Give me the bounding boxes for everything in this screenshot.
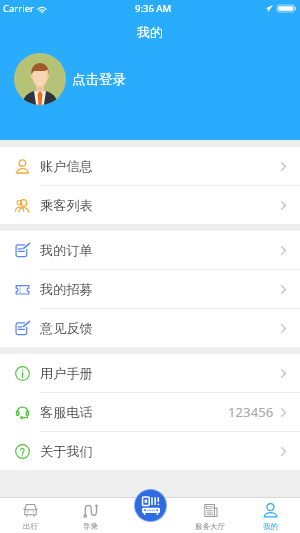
staticText: 我的招募 — [40, 281, 93, 298]
button[interactable]: 导乘 — [60, 498, 120, 533]
staticText: 123456 — [228, 403, 274, 421]
button[interactable]: 我的招募 — [0, 270, 300, 308]
staticText: 我的订单 — [40, 242, 93, 259]
staticText: 客服电话 — [40, 404, 93, 421]
staticText: 我的 — [137, 24, 163, 40]
staticText: 服务大厅 — [195, 522, 225, 531]
button[interactable]: 关于我们 — [0, 432, 300, 470]
staticText: 用户手册 — [40, 365, 93, 382]
button[interactable]: 扫一扫 — [135, 490, 166, 521]
button[interactable]: 服务大厅 — [180, 498, 240, 533]
button[interactable]: 用户手册 — [0, 354, 300, 392]
staticText: 导乘 — [83, 522, 98, 531]
staticText: 账户信息 — [40, 158, 93, 175]
button[interactable]: 意见反馈 — [0, 309, 300, 347]
staticText: 出行 — [23, 522, 38, 531]
staticText: 关于我们 — [40, 443, 93, 460]
button[interactable]: 账户信息 — [0, 147, 300, 185]
button[interactable]: 乘客列表 — [0, 186, 300, 224]
staticText: 9:36 AM — [135, 2, 172, 15]
button[interactable]: 我的 — [240, 498, 300, 533]
staticText: 乘客列表 — [40, 197, 93, 214]
button[interactable]: 出行 — [0, 498, 60, 533]
staticText: Carrier — [3, 2, 34, 15]
button[interactable]: 我的订单 — [0, 231, 300, 269]
staticText: 我的 — [263, 522, 278, 531]
button[interactable]: 客服电话 — [0, 393, 300, 431]
staticText: 点击登录 — [72, 71, 126, 88]
staticText: 意见反馈 — [40, 320, 93, 337]
